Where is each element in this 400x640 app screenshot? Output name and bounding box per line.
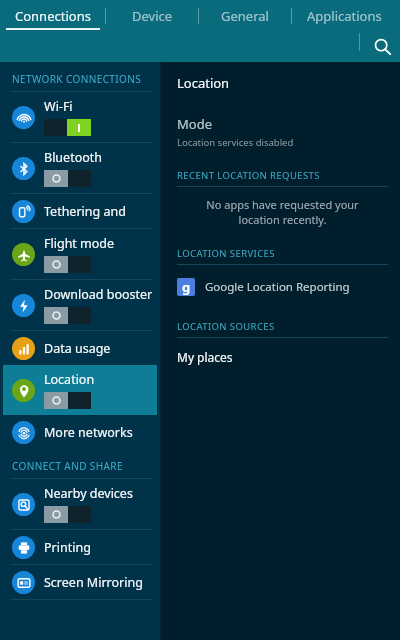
- button[interactable]: Turn off: [44, 119, 91, 136]
- staticText: Tethering and Mobi..: [44, 203, 157, 220]
- staticText: Nearby devices: [44, 485, 133, 502]
- button[interactable]: Search: [366, 30, 398, 62]
- button[interactable]: Turn on: [44, 307, 91, 324]
- staticText: LOCATION SOURCES: [177, 320, 275, 333]
- staticText: Printing: [44, 539, 91, 556]
- button[interactable]: Flight mode: [3, 229, 157, 279]
- staticText: Device: [132, 7, 173, 25]
- staticText: CONNECT AND SHARE: [12, 459, 123, 473]
- button[interactable]: Turn on: [44, 506, 91, 523]
- button[interactable]: Screen Mirroring: [3, 565, 157, 599]
- button[interactable]: Turn on: [44, 170, 91, 187]
- staticText: Data usage: [44, 340, 111, 357]
- staticText: Connections: [15, 7, 91, 25]
- staticText: Download booster: [44, 286, 153, 303]
- staticText: Wi-Fi: [44, 98, 73, 115]
- staticText: Location: [44, 371, 95, 388]
- staticText: Location: [177, 74, 230, 92]
- button[interactable]: g: [177, 274, 388, 300]
- staticText: Screen Mirroring: [44, 574, 143, 591]
- button[interactable]: Device: [106, 0, 198, 32]
- button[interactable]: More networks: [3, 415, 157, 449]
- staticText: Applications: [307, 7, 382, 25]
- button[interactable]: Applications: [292, 0, 397, 32]
- button[interactable]: My places: [177, 349, 388, 365]
- button[interactable]: Download booster: [3, 280, 157, 330]
- staticText: My places: [177, 349, 233, 365]
- staticText: Google Location Reporting: [205, 279, 350, 295]
- button[interactable]: Bluetooth: [3, 143, 157, 193]
- button[interactable]: Tethering and Mobi..: [3, 194, 157, 228]
- staticText: LOCATION SERVICES: [177, 247, 275, 260]
- staticText: g: [182, 278, 191, 296]
- staticText: NETWORK CONNECTIONS: [12, 72, 142, 86]
- staticText: More networks: [44, 424, 133, 441]
- staticText: Location services disabled: [177, 136, 294, 149]
- button[interactable]: Turn on: [44, 392, 91, 409]
- button[interactable]: Connections: [0, 0, 105, 32]
- staticText: General: [221, 7, 269, 25]
- button[interactable]: Location: [3, 365, 157, 415]
- button[interactable]: Nearby devices: [3, 479, 157, 529]
- button[interactable]: Wi-Fi: [3, 92, 157, 142]
- staticText: Mode: [177, 115, 212, 133]
- button[interactable]: Printing: [3, 530, 157, 564]
- button[interactable]: Turn on: [44, 256, 91, 273]
- button[interactable]: Mode: [177, 115, 388, 149]
- staticText: No apps have requested your location rec…: [187, 197, 378, 227]
- button[interactable]: General: [199, 0, 291, 32]
- staticText: Flight mode: [44, 235, 115, 252]
- staticText: RECENT LOCATION REQUESTS: [177, 169, 320, 182]
- staticText: Bluetooth: [44, 149, 103, 166]
- button[interactable]: Data usage: [3, 331, 157, 365]
